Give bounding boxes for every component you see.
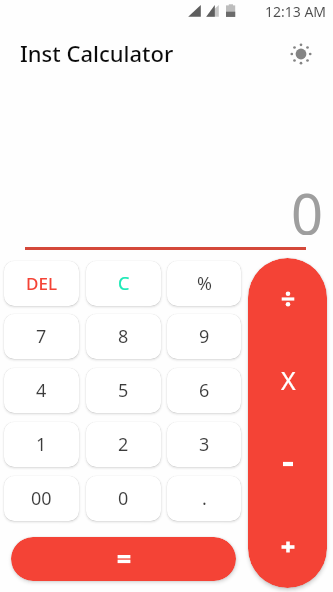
staticText: 6: [199, 378, 210, 403]
staticText: Inst Calculator: [20, 38, 174, 68]
button[interactable]: 9: [167, 314, 241, 359]
button[interactable]: Subtract: [248, 422, 327, 505]
staticText: 4: [36, 378, 47, 403]
button[interactable]: 3: [167, 422, 241, 467]
staticText: X: [281, 363, 296, 397]
button[interactable]: 2: [86, 422, 161, 467]
staticText: 0: [118, 486, 129, 511]
staticText: %: [197, 271, 212, 296]
staticText: 5: [118, 378, 129, 403]
button[interactable]: %: [167, 261, 241, 306]
button[interactable]: Multiply: [248, 340, 327, 422]
button[interactable]: 6: [167, 368, 241, 413]
staticText: 00: [31, 486, 52, 511]
button[interactable]: 00: [4, 476, 79, 521]
staticText: C: [118, 271, 130, 296]
staticText: 1: [36, 432, 47, 457]
button[interactable]: 5: [86, 368, 161, 413]
button[interactable]: 8: [86, 314, 161, 359]
staticText: DEL: [26, 272, 57, 295]
staticText: 2: [118, 432, 129, 457]
staticText: 7: [36, 324, 47, 349]
button[interactable]: 0: [86, 476, 161, 521]
staticText: 9: [199, 324, 210, 349]
button[interactable]: Divide: [248, 258, 327, 340]
staticText: 3: [199, 432, 210, 457]
button[interactable]: .: [167, 476, 241, 521]
staticText: 12:13 AM: [265, 2, 327, 21]
staticText: 0: [291, 175, 324, 235]
staticText: 8: [118, 324, 129, 349]
button[interactable]: 7: [4, 314, 79, 359]
button[interactable]: C: [86, 261, 161, 306]
staticText: .: [202, 486, 207, 511]
button[interactable]: Toggle brightness: [289, 42, 313, 66]
button[interactable]: 4: [4, 368, 79, 413]
button[interactable]: Equals: [11, 537, 236, 581]
button[interactable]: DEL: [4, 261, 79, 306]
button[interactable]: 1: [4, 422, 79, 467]
button[interactable]: Add: [248, 505, 327, 588]
